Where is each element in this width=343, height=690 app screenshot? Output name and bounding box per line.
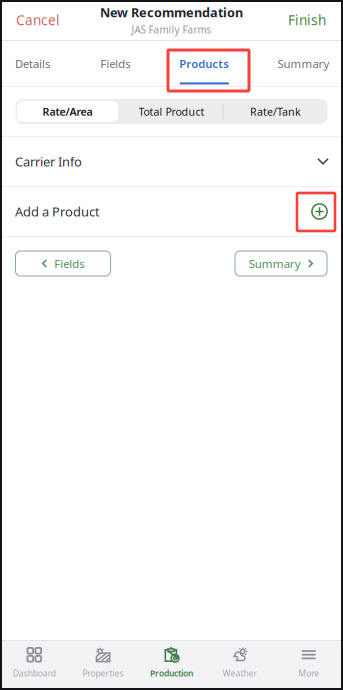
staticText: Rate/Area [42,104,92,119]
staticText: Summary [277,56,329,71]
button[interactable]: More [274,641,343,690]
staticText: Fields [54,256,84,271]
staticText: Cancel [16,11,60,29]
staticText: JAS Family Farms [131,23,211,36]
button[interactable]: Summary [235,251,327,276]
staticText: Dashboard [13,667,56,679]
staticText: Total Product [138,104,204,119]
button[interactable]: Carrier Info [0,137,343,186]
button[interactable]: Cancel [0,0,76,40]
button[interactable]: Fields [101,41,130,86]
button[interactable]: Add a Product [0,187,343,236]
staticText: Weather [223,667,258,679]
button[interactable]: Fields [15,251,110,276]
button[interactable]: Total Product [119,99,223,124]
button[interactable]: Properties [69,641,137,690]
button[interactable]: Finish [271,0,343,40]
staticText: Summary [249,256,301,271]
button[interactable]: Summary [279,41,328,86]
staticText: Add a Product [15,203,100,220]
staticText: Carrier Info [15,153,82,170]
staticText: Details [15,56,50,71]
staticText: Fields [100,56,130,71]
button[interactable]: Production [137,641,206,690]
staticText: Rate/Tank [250,104,301,119]
button[interactable]: Details [15,41,50,86]
staticText: More [298,667,319,679]
staticText: Properties [82,667,123,679]
staticText: Finish [288,11,326,29]
button[interactable]: Dashboard [0,641,69,690]
staticText: New Recommendation [100,4,243,21]
staticText: Products [179,56,229,71]
button[interactable]: Rate/Tank [223,99,327,124]
button[interactable]: Weather [206,641,274,690]
button[interactable]: Rate/Area [15,99,119,124]
staticText: Production [150,667,193,679]
button[interactable]: Products [180,41,228,86]
